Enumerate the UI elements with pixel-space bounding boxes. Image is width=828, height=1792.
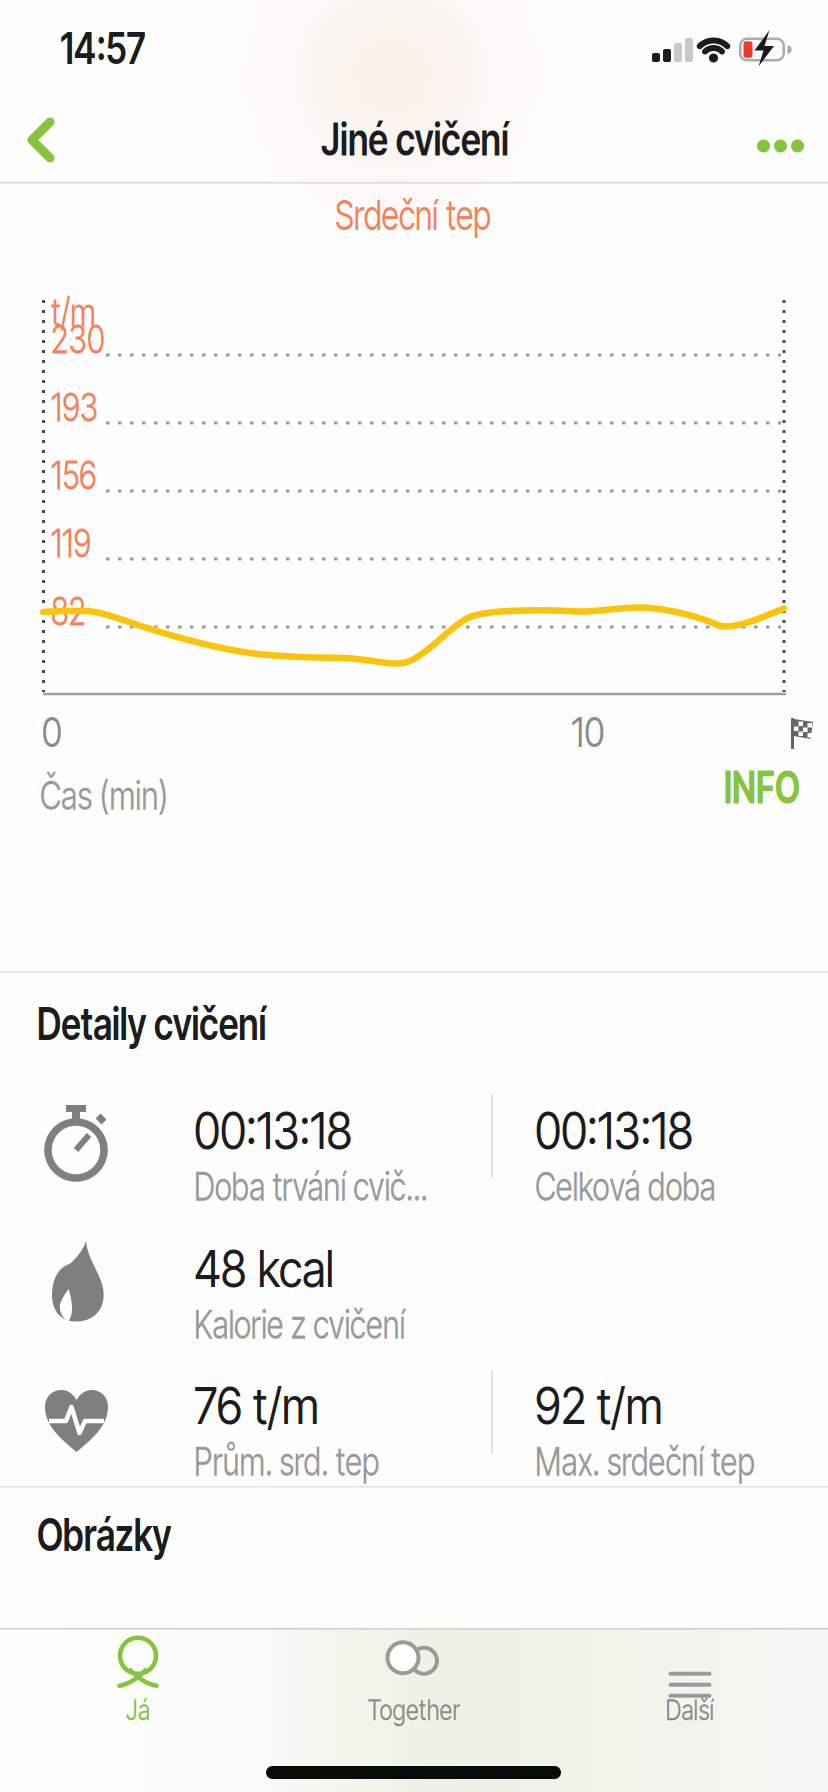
staticText: 156: [51, 452, 108, 499]
button[interactable]: INFO: [697, 759, 827, 815]
staticText: 119: [51, 520, 101, 567]
staticText: 0: [40, 707, 64, 757]
staticText: 230: [51, 316, 118, 363]
staticText: Together: [356, 1692, 472, 1727]
button[interactable]: Další: [552, 1611, 828, 1751]
staticText: Srdeční tep: [312, 190, 513, 240]
staticText: Max. srdeční tep: [535, 1438, 810, 1485]
button[interactable]: More: [740, 127, 787, 152]
staticText: 00:13:18: [535, 1100, 712, 1161]
staticText: Jiné cvičení: [295, 112, 534, 166]
button[interactable]: Back: [23, 117, 59, 162]
staticText: 76 t/m: [194, 1375, 334, 1436]
staticText: 14:57: [49, 21, 156, 75]
button[interactable]: Já: [0, 1611, 276, 1751]
staticText: Čas (min): [40, 771, 205, 819]
staticText: 10: [568, 707, 607, 757]
staticText: Další: [659, 1692, 720, 1727]
button[interactable]: Together: [276, 1611, 552, 1751]
staticText: Celková doba: [535, 1163, 761, 1210]
staticText: Detaily cvičení: [37, 996, 331, 1051]
staticText: Obrázky: [37, 1507, 209, 1562]
staticText: 92 t/m: [535, 1375, 678, 1436]
staticText: 193: [51, 384, 110, 431]
staticText: 82: [51, 588, 95, 635]
staticText: Doba trvání cvič...: [194, 1163, 486, 1210]
staticText: t/m: [51, 289, 107, 336]
staticText: 00:13:18: [194, 1100, 371, 1161]
staticText: Prům. srd. tep: [194, 1438, 426, 1485]
staticText: 48 kcal: [194, 1238, 351, 1299]
staticText: Kalorie z cvičení: [194, 1301, 458, 1348]
staticText: Já: [123, 1692, 153, 1727]
staticText: INFO: [711, 760, 813, 814]
